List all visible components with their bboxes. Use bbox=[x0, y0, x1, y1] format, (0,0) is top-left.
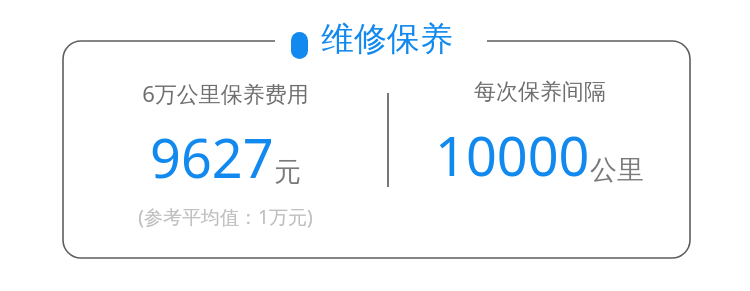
button[interactable]: 每次保养间隔 bbox=[389, 78, 690, 192]
button[interactable]: 6万公里保养费用 bbox=[63, 78, 387, 230]
staticText: 公里 bbox=[590, 153, 644, 187]
staticText: (参考平均值：1万元) bbox=[138, 204, 313, 230]
staticText: 10000 bbox=[435, 118, 590, 192]
staticText: 元 bbox=[274, 155, 301, 189]
button[interactable]: 维修保养图标 bbox=[291, 18, 453, 60]
staticText: 维修保养 bbox=[321, 18, 453, 60]
staticText: 6万公里保养费用 bbox=[142, 78, 309, 108]
other: 维修保养图标 bbox=[291, 32, 308, 59]
staticText: 每次保养间隔 bbox=[474, 78, 606, 106]
staticText: 9627 bbox=[150, 120, 274, 194]
